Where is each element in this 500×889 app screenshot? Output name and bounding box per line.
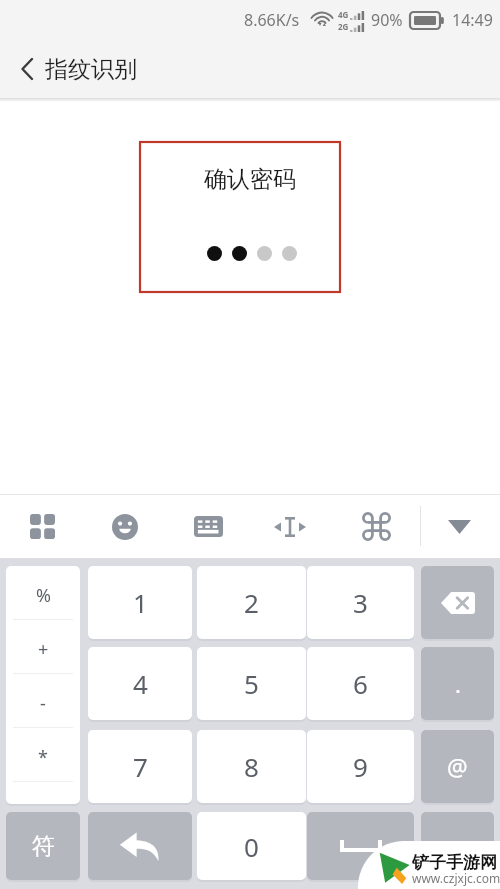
staticText: 确定 (438, 842, 478, 867)
button[interactable]: 6 (307, 647, 414, 720)
staticText: 确认密码 (204, 165, 296, 194)
button[interactable]: 9 (307, 730, 414, 803)
staticText: 4 (133, 666, 148, 701)
button[interactable]: Enter (88, 812, 192, 880)
staticText: 2G (338, 21, 349, 32)
button[interactable]: Backspace (421, 566, 494, 639)
staticText: + (38, 637, 49, 662)
staticText: 3 (353, 585, 368, 620)
staticText: 1 (133, 585, 148, 620)
button[interactable]: Hide keyboard (428, 495, 490, 558)
staticText: 8.66K/s (244, 9, 300, 31)
staticText: 8 (244, 749, 259, 784)
button[interactable]: At sign (421, 730, 494, 803)
button[interactable]: 1 (88, 566, 192, 639)
staticText: @ (447, 751, 468, 782)
staticText: 7 (133, 749, 148, 784)
button[interactable]: 3 (307, 566, 414, 639)
staticText: 90% (371, 9, 403, 31)
button[interactable]: 7 (88, 730, 192, 803)
button[interactable]: 5 (197, 647, 306, 720)
staticText: 9 (353, 749, 368, 784)
button[interactable]: Space (307, 812, 414, 880)
button[interactable]: 8 (197, 730, 306, 803)
staticText: % (36, 583, 51, 608)
button[interactable]: Period (421, 647, 494, 720)
staticText: . (455, 669, 461, 699)
staticText: 4G (338, 9, 349, 20)
staticText: 符 (32, 832, 55, 861)
button[interactable]: 2 (197, 566, 306, 639)
button[interactable]: 4 (88, 647, 192, 720)
button[interactable]: More symbols (6, 782, 80, 804)
button[interactable]: Confirm (421, 812, 494, 880)
button[interactable]: % (6, 566, 80, 619)
staticText: 指纹识别 (45, 55, 137, 84)
button[interactable]: * (6, 728, 80, 781)
button[interactable]: Keyboard (177, 495, 239, 558)
staticText: 5 (244, 666, 259, 701)
staticText: www.czjxjc.com (412, 870, 500, 886)
button[interactable]: 0 (197, 812, 306, 880)
button[interactable]: Emoji (94, 495, 156, 558)
staticText: - (40, 691, 46, 716)
staticText: 铲子手游网 (412, 852, 497, 873)
button[interactable]: + (6, 620, 80, 673)
staticText: * (38, 745, 48, 770)
button[interactable]: Shortcuts (345, 495, 407, 558)
button[interactable]: - (6, 674, 80, 727)
button[interactable]: Back (0, 40, 45, 98)
staticText: 6 (353, 666, 368, 701)
button[interactable]: Grid (11, 495, 73, 558)
staticText: 0 (244, 829, 259, 864)
staticText: 14:49 (452, 9, 493, 31)
button[interactable]: Symbols (6, 812, 80, 880)
staticText: 2 (244, 585, 259, 620)
button[interactable]: Move cursor (259, 495, 321, 558)
